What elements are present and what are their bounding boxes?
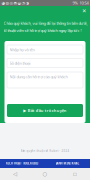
staticText: 9% 10:54	[72, 0, 88, 6]
staticText: Nhập họ và tên	[9, 47, 34, 52]
staticText: Bản quyền thuộc về Kubet · 2024	[20, 149, 69, 153]
button[interactable]: Home	[30, 168, 60, 180]
staticText: □	[73, 172, 77, 176]
button[interactable]: Back	[0, 168, 30, 180]
staticText: Bắt đầu trò chuyện	[28, 108, 67, 113]
staticText: Chào quý khách, vui lòng để lại thông ti…	[3, 20, 87, 26]
staticText: ▶	[23, 108, 26, 113]
staticText: kĩ thuật viên sẽ hỗ trợ quý khách ngay l…	[3, 28, 81, 33]
button[interactable]: Nhập họ và tên	[7, 45, 83, 54]
button[interactable]: Close	[80, 7, 88, 15]
button[interactable]: SẢNH MINI KHÁC	[45, 159, 90, 168]
staticText: SẢNH MINI KHÁC	[55, 162, 79, 165]
button[interactable]: KÍCH HOẠT TOOL KUBET	[0, 159, 45, 168]
staticText: Số điện thoại	[9, 60, 30, 66]
button[interactable]: Nội dung cần hỗ trợ của quý khách	[7, 72, 83, 88]
staticText: Nội dung cần hỗ trợ của quý khách	[9, 74, 67, 79]
staticText: ✕	[82, 8, 86, 14]
button[interactable]: Recents	[60, 168, 90, 180]
button[interactable]: ▶	[7, 104, 83, 117]
staticText: ◁	[13, 171, 17, 177]
staticText: ○	[42, 171, 47, 177]
staticText: ◕ ◍ ◎ ◓ ◒ ◔ ◑	[1, 1, 28, 5]
button[interactable]: Số điện thoại	[7, 58, 83, 67]
staticText: KÍCH HOẠT TOOL KUBET	[6, 162, 39, 165]
